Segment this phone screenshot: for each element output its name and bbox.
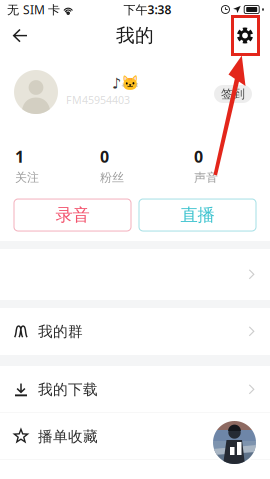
button[interactable]: 直播	[139, 199, 256, 231]
staticText: 录音	[55, 204, 89, 226]
staticText: 粉丝	[100, 170, 124, 185]
button[interactable]: 我的群	[0, 308, 270, 355]
button[interactable]: 我的下载	[0, 366, 270, 413]
button[interactable]: 录音	[14, 199, 131, 231]
button[interactable]: 0	[100, 146, 194, 185]
staticText: 我的	[116, 24, 154, 47]
staticText: 无 SIM 卡	[7, 1, 60, 17]
staticText: 声音	[194, 170, 218, 185]
staticText: 我的下载	[38, 380, 98, 398]
button[interactable]: 签到	[214, 85, 252, 103]
button[interactable]: 播单收藏	[0, 413, 270, 460]
button[interactable]: 0	[194, 146, 257, 185]
staticText: 下午3:38	[124, 1, 172, 17]
staticText: 1	[15, 146, 24, 167]
staticText: 关注	[15, 170, 39, 185]
staticText: 0	[100, 146, 109, 167]
staticText: 我的群	[38, 322, 83, 340]
staticText: 播单收藏	[38, 427, 98, 445]
staticText: 签到	[221, 87, 245, 101]
staticText: ♪🐱	[112, 75, 139, 92]
staticText: FM45954403	[66, 93, 130, 107]
staticText: 0	[194, 146, 203, 167]
button[interactable]: Back	[5, 19, 35, 52]
staticText: 直播	[180, 204, 214, 226]
button[interactable]: 1	[15, 146, 100, 185]
button[interactable]: Settings	[229, 19, 261, 52]
